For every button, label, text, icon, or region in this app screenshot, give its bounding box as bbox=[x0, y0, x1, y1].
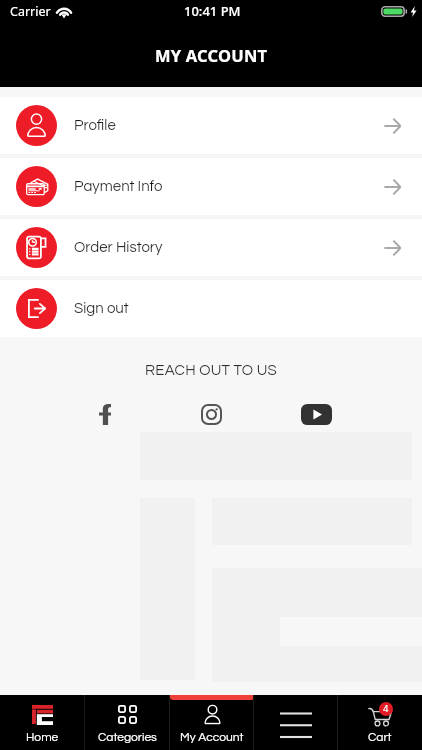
button[interactable]: Categories bbox=[85, 695, 170, 750]
staticText: REACH OUT TO US bbox=[0, 363, 422, 378]
button[interactable]: Order History bbox=[0, 219, 422, 276]
staticText: Home bbox=[26, 731, 59, 743]
button[interactable]: Home bbox=[0, 695, 85, 750]
staticText: Payment Info bbox=[74, 179, 163, 194]
staticText: Carrier bbox=[10, 3, 51, 20]
button[interactable]: More menu bbox=[254, 695, 338, 750]
button[interactable]: Instagram bbox=[194, 397, 228, 431]
button[interactable]: YouTube bbox=[299, 397, 333, 431]
staticText: MY ACCOUNT bbox=[155, 44, 268, 66]
staticText: 4 bbox=[383, 704, 389, 714]
button[interactable]: Facebook bbox=[88, 397, 122, 431]
staticText: Sign out bbox=[74, 301, 129, 316]
staticText: Cart bbox=[368, 731, 392, 743]
button[interactable]: Sign out bbox=[0, 280, 422, 337]
button[interactable]: Cart bbox=[338, 695, 422, 750]
staticText: Order History bbox=[74, 240, 163, 255]
staticText: My Account bbox=[180, 731, 244, 743]
button[interactable]: My Account bbox=[170, 695, 254, 750]
button[interactable]: Profile bbox=[0, 97, 422, 154]
staticText: Categories bbox=[98, 731, 157, 743]
button[interactable]: Payment Info bbox=[0, 158, 422, 215]
staticText: Profile bbox=[74, 118, 116, 133]
staticText: 10:41 PM bbox=[184, 2, 241, 20]
